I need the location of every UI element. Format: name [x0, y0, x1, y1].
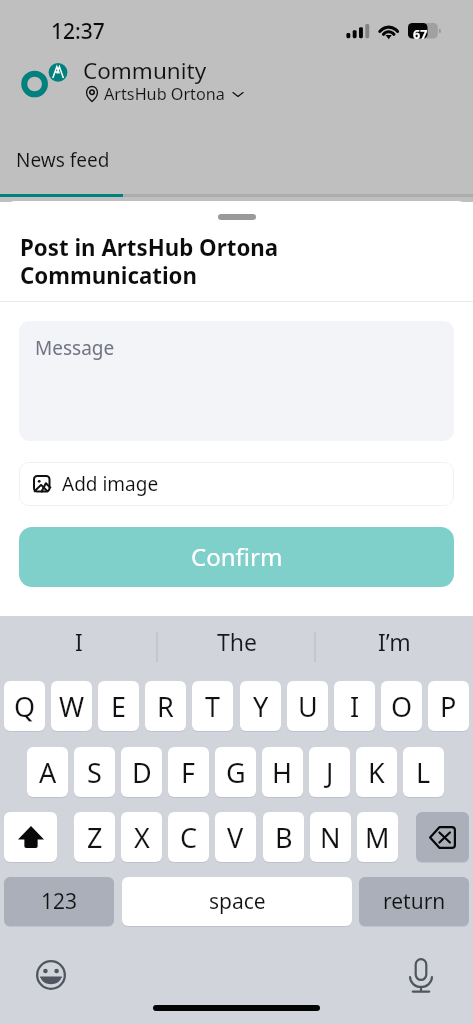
- staticText: Message: [35, 335, 115, 361]
- staticText: T: [205, 688, 221, 725]
- button[interactable]: Dictation: [399, 953, 443, 997]
- staticText: A: [39, 754, 57, 791]
- button[interactable]: U: [287, 681, 328, 731]
- button[interactable]: J: [309, 747, 350, 797]
- button[interactable]: News feed: [0, 128, 124, 198]
- button[interactable]: C: [168, 812, 209, 862]
- staticText: N: [320, 819, 341, 856]
- button[interactable]: R: [145, 681, 186, 731]
- button[interactable]: K: [356, 747, 397, 797]
- button[interactable]: space: [122, 877, 352, 926]
- button[interactable]: N: [310, 812, 351, 862]
- staticText: K: [368, 754, 385, 791]
- staticText: I’m: [378, 626, 411, 657]
- button[interactable]: F: [168, 747, 209, 797]
- staticText: News feed: [16, 147, 110, 173]
- staticText: R: [157, 688, 174, 725]
- staticText: W: [59, 688, 85, 725]
- button[interactable]: Emoji keyboard: [29, 953, 73, 997]
- button[interactable]: Z: [74, 812, 115, 862]
- staticText: The: [217, 626, 257, 657]
- button[interactable]: H: [262, 747, 303, 797]
- staticText: ArtsHub Ortona: [104, 83, 225, 105]
- staticText: M: [365, 819, 390, 856]
- button[interactable]: Backspace: [416, 812, 469, 862]
- button[interactable]: I’m: [315, 616, 473, 666]
- staticText: S: [87, 754, 102, 791]
- button[interactable]: return: [359, 877, 469, 926]
- staticText: B: [275, 819, 293, 856]
- button[interactable]: Confirm: [19, 527, 454, 587]
- staticText: E: [111, 688, 127, 725]
- staticText: 123: [41, 887, 78, 916]
- button[interactable]: S: [74, 747, 115, 797]
- button[interactable]: 123: [4, 877, 114, 926]
- button[interactable]: Add image: [19, 462, 454, 506]
- staticText: Z: [87, 819, 103, 856]
- button[interactable]: P: [428, 681, 469, 731]
- staticText: C: [180, 819, 198, 856]
- button[interactable]: M: [357, 812, 398, 862]
- staticText: Y: [253, 688, 269, 725]
- staticText: Post in ArtsHub Ortona Communication: [20, 232, 279, 291]
- button[interactable]: I: [0, 616, 158, 666]
- button[interactable]: Shift: [4, 812, 57, 862]
- button[interactable]: A: [27, 747, 68, 797]
- staticText: F: [181, 754, 196, 791]
- staticText: P: [440, 688, 457, 725]
- staticText: I: [75, 626, 83, 657]
- button[interactable]: T: [192, 681, 233, 731]
- staticText: D: [132, 754, 152, 791]
- staticText: Q: [14, 688, 36, 725]
- staticText: L: [416, 754, 431, 791]
- staticText: I: [350, 688, 360, 725]
- staticText: G: [226, 754, 246, 791]
- button[interactable]: Q: [4, 681, 45, 731]
- button[interactable]: E: [98, 681, 139, 731]
- button[interactable]: X: [121, 812, 162, 862]
- button[interactable]: The: [158, 616, 316, 666]
- button[interactable]: L: [403, 747, 444, 797]
- staticText: V: [227, 819, 244, 856]
- staticText: 12:37: [51, 17, 105, 46]
- staticText: O: [391, 688, 413, 725]
- staticText: Confirm: [191, 540, 283, 573]
- staticText: space: [209, 887, 266, 916]
- button[interactable]: D: [121, 747, 162, 797]
- staticText: U: [298, 688, 318, 725]
- button[interactable]: B: [263, 812, 304, 862]
- staticText: return: [383, 887, 446, 916]
- staticText: 67: [413, 26, 428, 42]
- staticText: Community: [83, 55, 207, 86]
- staticText: X: [134, 819, 150, 856]
- button[interactable]: Message: [19, 321, 454, 441]
- button[interactable]: G: [215, 747, 256, 797]
- staticText: H: [272, 754, 293, 791]
- button[interactable]: O: [381, 681, 422, 731]
- button[interactable]: W: [51, 681, 92, 731]
- staticText: Add image: [62, 471, 159, 497]
- staticText: J: [326, 754, 334, 791]
- button[interactable]: V: [215, 812, 256, 862]
- button[interactable]: Y: [240, 681, 281, 731]
- button[interactable]: I: [334, 681, 375, 731]
